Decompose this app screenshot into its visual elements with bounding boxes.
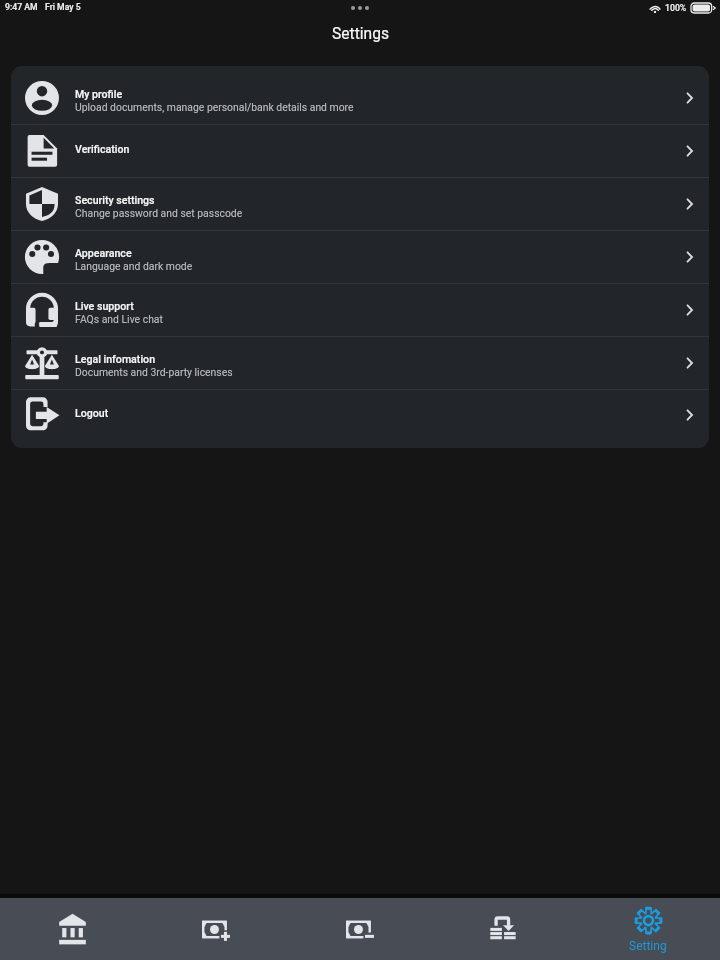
button[interactable]: Deposit: [144, 898, 288, 960]
button[interactable]: My profile: [11, 66, 709, 124]
staticText: Verification: [75, 143, 130, 155]
staticText: Setting: [629, 939, 667, 953]
staticText: Upload documents, manage personal/bank d…: [75, 101, 354, 113]
button[interactable]: Setting: [576, 898, 720, 960]
button[interactable]: Legal infomation: [11, 337, 709, 389]
staticText: Appearance: [75, 247, 132, 259]
staticText: Change password and set passcode: [75, 207, 243, 219]
staticText: Live support: [75, 300, 134, 312]
staticText: Security settings: [75, 194, 155, 206]
staticText: My profile: [75, 88, 123, 100]
button[interactable]: Accounts: [0, 898, 144, 960]
staticText: 9:47 AM: [5, 2, 38, 12]
staticText: 100%: [665, 3, 687, 13]
staticText: FAQs and Live chat: [75, 313, 163, 325]
button[interactable]: Security settings: [11, 178, 709, 230]
button[interactable]: Live support: [11, 284, 709, 336]
button[interactable]: Transfer: [432, 898, 576, 960]
staticText: Legal infomation: [75, 353, 156, 365]
button[interactable]: Withdraw: [288, 898, 432, 960]
staticText: Settings: [332, 25, 389, 43]
button[interactable]: Appearance: [11, 231, 709, 283]
staticText: Logout: [75, 407, 109, 419]
button[interactable]: Logout: [11, 390, 709, 448]
staticText: Fri May 5: [45, 2, 81, 12]
staticText: Documents and 3rd-party licenses: [75, 366, 233, 378]
staticText: Language and dark mode: [75, 260, 193, 272]
button[interactable]: Verification: [11, 125, 709, 177]
